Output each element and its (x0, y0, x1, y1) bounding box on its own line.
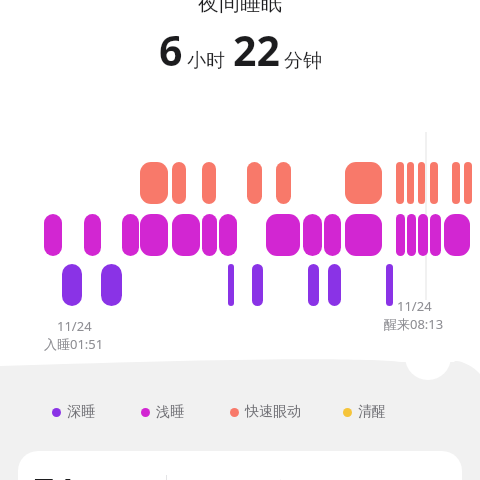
staticText: 快速眼动 (245, 403, 301, 421)
button[interactable]: 快速眼动 (230, 403, 301, 421)
staticText: 入睡01:51 (44, 335, 104, 353)
staticText: 6 (159, 22, 183, 78)
staticText: 小时 (187, 49, 225, 73)
staticText: 夜间睡眠 (198, 0, 282, 16)
button[interactable]: 深睡 (52, 403, 95, 421)
staticText: 浅睡 (156, 403, 184, 421)
staticText: 醒来08:13 (384, 315, 444, 333)
staticText: 深睡 (67, 403, 95, 421)
button[interactable]: 清醒 (343, 403, 386, 421)
button[interactable]: Sleep stage chart (0, 132, 480, 312)
staticText: 11/24 (397, 297, 432, 315)
staticText: 分钟 (284, 49, 322, 73)
staticText: 11/24 (57, 317, 92, 335)
staticText: 22 (233, 22, 280, 78)
staticText: 74 (34, 468, 75, 480)
button[interactable]: 74 (18, 451, 462, 480)
staticText: 清醒 (358, 403, 386, 421)
button[interactable]: 浅睡 (141, 403, 184, 421)
